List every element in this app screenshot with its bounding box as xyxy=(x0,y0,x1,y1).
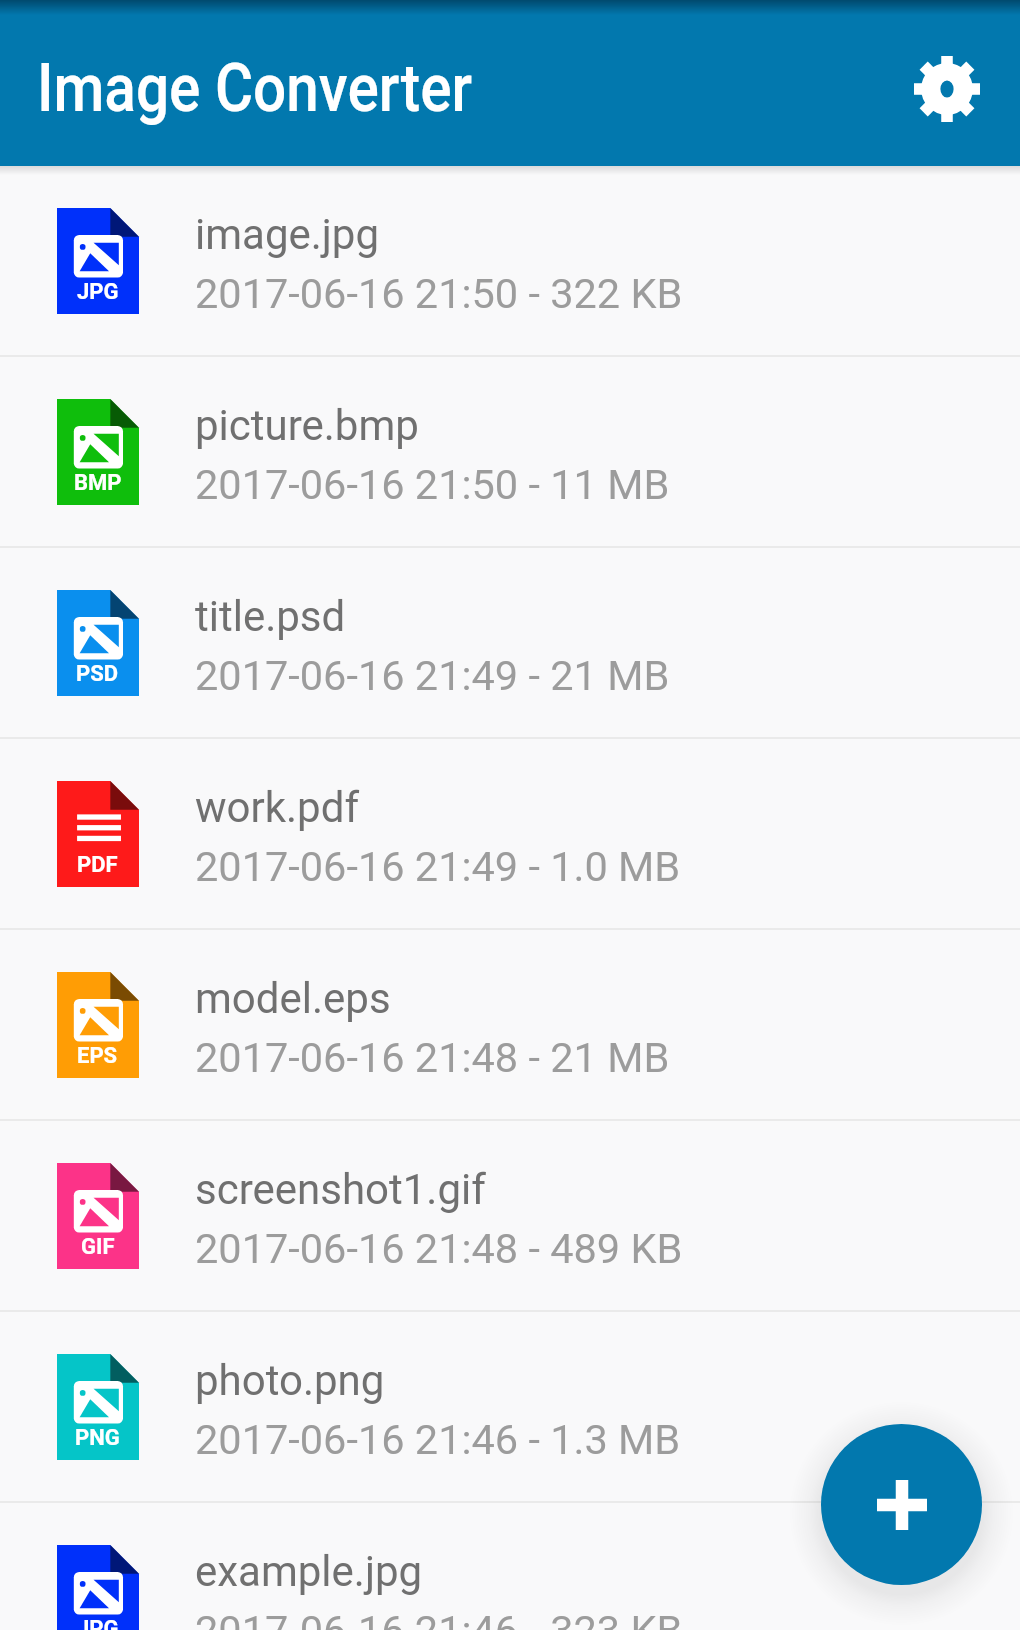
button[interactable]: PDF xyxy=(0,739,1020,928)
staticText: 2017-06-16 21:48 - 21 MB xyxy=(195,1033,670,1082)
button[interactable]: GIF xyxy=(0,1121,1020,1310)
staticText: JPG xyxy=(77,1616,119,1630)
button[interactable]: Settings xyxy=(904,46,990,132)
staticText: 2017-06-16 21:49 - 21 MB xyxy=(195,651,670,700)
staticText: 2017-06-16 21:50 - 322 KB xyxy=(195,269,683,318)
button[interactable]: Add file xyxy=(821,1424,982,1585)
staticText: 2017-06-16 21:49 - 1.0 MB xyxy=(195,842,681,891)
staticText: image.jpg xyxy=(195,210,380,259)
button[interactable]: PNG xyxy=(0,1312,1020,1501)
button[interactable]: JPG xyxy=(0,166,1020,355)
staticText: GIF xyxy=(81,1234,115,1260)
staticText: work.pdf xyxy=(195,783,359,832)
button[interactable]: EPS xyxy=(0,930,1020,1119)
staticText: JPG xyxy=(77,279,119,305)
button[interactable]: JPG xyxy=(0,1503,1020,1630)
staticText: Image Converter xyxy=(37,50,472,127)
staticText: title.psd xyxy=(195,592,346,641)
staticText: 2017-06-16 21:46 - 323 KB xyxy=(195,1606,683,1630)
staticText: photo.png xyxy=(195,1356,385,1405)
staticText: picture.bmp xyxy=(195,401,419,450)
staticText: model.eps xyxy=(195,974,391,1023)
staticText: screenshot1.gif xyxy=(195,1165,486,1214)
staticText: EPS xyxy=(77,1043,118,1069)
staticText: 2017-06-16 21:46 - 1.3 MB xyxy=(195,1415,681,1464)
staticText: example.jpg xyxy=(195,1547,423,1596)
staticText: PDF xyxy=(77,852,118,878)
button[interactable]: BMP xyxy=(0,357,1020,546)
staticText: 2017-06-16 21:48 - 489 KB xyxy=(195,1224,683,1273)
button[interactable]: PSD xyxy=(0,548,1020,737)
staticText: BMP xyxy=(74,470,122,496)
staticText: PNG xyxy=(75,1425,120,1451)
staticText: PSD xyxy=(76,661,119,687)
staticText: 2017-06-16 21:50 - 11 MB xyxy=(195,460,670,509)
